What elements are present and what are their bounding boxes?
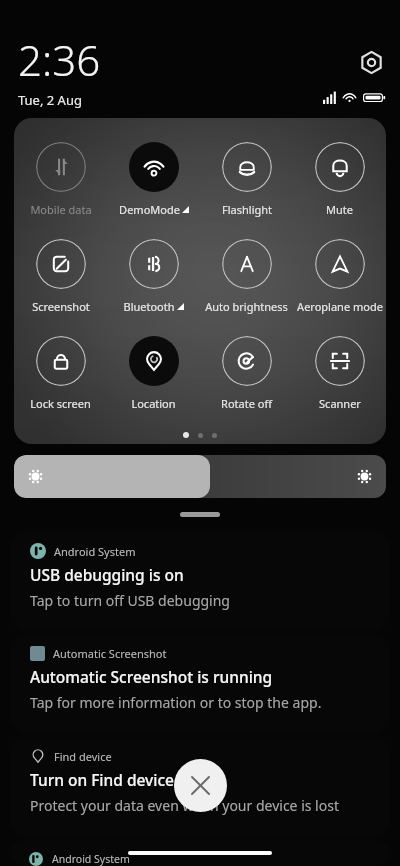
staticText: Auto brightness: [205, 299, 288, 314]
button[interactable]: Brightness: [14, 455, 386, 498]
staticText: Flashlight: [222, 202, 272, 217]
button[interactable]: Aeroplane mode: [293, 239, 386, 314]
button[interactable]: Mobile data: [14, 142, 107, 217]
button[interactable]: Screenshot: [14, 239, 107, 314]
button[interactable]: Find device: [11, 737, 389, 836]
staticText: Rotate off: [221, 396, 272, 411]
staticText: Scanner: [319, 396, 361, 411]
staticText: Protect your data even when your device …: [30, 796, 339, 815]
staticText: Lock screen: [30, 396, 91, 411]
staticText: DemoMode: [119, 202, 180, 217]
staticText: Android System: [54, 544, 136, 559]
staticText: Location: [131, 396, 176, 411]
button[interactable]: Lock screen: [14, 336, 107, 411]
staticText: 2:36: [18, 31, 101, 88]
staticText: Screenshot: [32, 299, 90, 314]
staticText: Tue, 2 Aug: [18, 91, 82, 109]
staticText: Automatic Screenshot: [53, 646, 167, 661]
button[interactable]: Android System: [11, 532, 389, 631]
staticText: Mute: [326, 202, 353, 217]
button[interactable]: Flashlight: [200, 142, 293, 217]
staticText: USB debugging is on: [30, 564, 184, 585]
button[interactable]: Clear all notifications: [174, 759, 227, 812]
staticText: Turn on Find device: [30, 769, 174, 790]
button[interactable]: Settings: [355, 46, 387, 78]
button[interactable]: Auto brightness: [200, 239, 293, 314]
staticText: Find device: [54, 749, 112, 764]
button[interactable]: Android System: [11, 840, 389, 866]
button[interactable]: Bluetooth: [107, 239, 200, 314]
button[interactable]: Location: [107, 336, 200, 411]
staticText: Mobile data: [30, 202, 92, 217]
button[interactable]: Scanner: [293, 336, 386, 411]
staticText: Automatic Screenshot is running: [30, 666, 273, 687]
staticText: Android System: [52, 852, 130, 866]
button[interactable]: Rotate off: [200, 336, 293, 411]
staticText: Aeroplane mode: [297, 299, 383, 314]
staticText: Tap to turn off USB debugging: [30, 591, 230, 610]
staticText: Bluetooth: [123, 299, 175, 314]
staticText: Tap for more information or to stop the …: [30, 693, 322, 712]
button[interactable]: DemoMode: [107, 142, 200, 217]
button[interactable]: Mute: [293, 142, 386, 217]
button[interactable]: Automatic Screenshot: [11, 635, 389, 733]
